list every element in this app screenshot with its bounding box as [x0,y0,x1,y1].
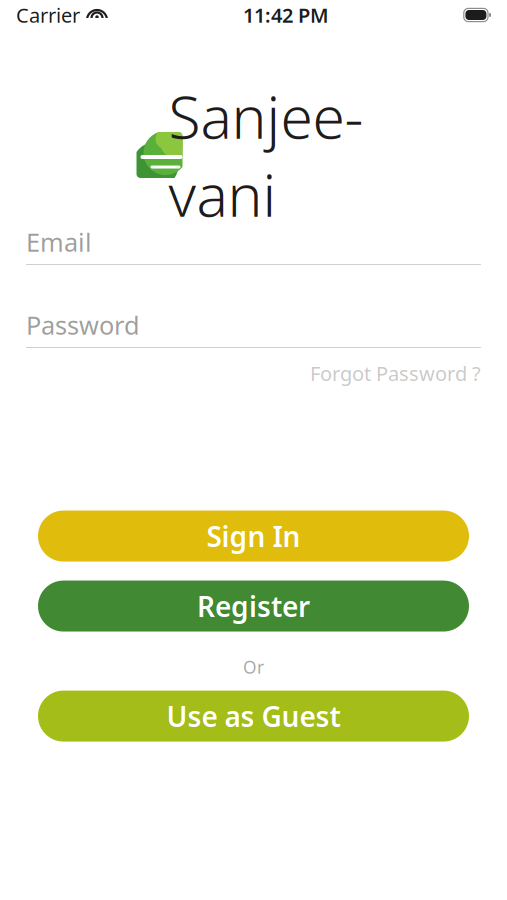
button[interactable]: Forgot Password ? [310,348,481,391]
staticText: Sign In [206,517,300,555]
staticText: Or [243,656,264,679]
staticText: Carrier [16,2,80,28]
staticText: Register [197,587,310,625]
staticText: Use as Guest [166,697,340,735]
button[interactable]: Sign In [38,511,469,562]
staticText: Password [26,308,140,342]
button[interactable]: Register [38,581,469,632]
staticText: Email [26,225,92,259]
staticText: Forgot Password ? [310,360,481,387]
staticText: Sanjeevani [168,77,363,233]
staticText: 11:42 PM [243,2,329,28]
button[interactable]: Use as Guest [38,691,469,742]
